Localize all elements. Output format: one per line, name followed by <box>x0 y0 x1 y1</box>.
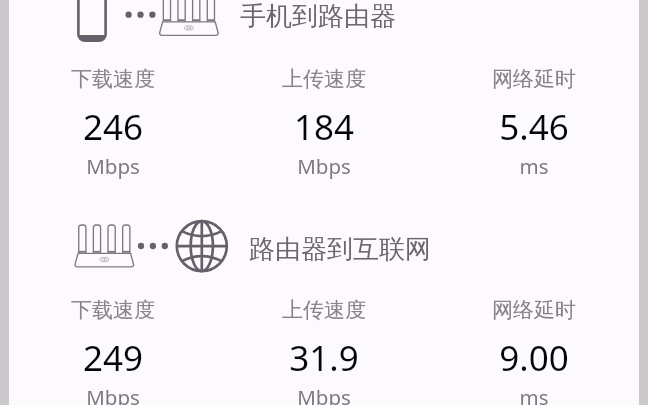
staticText: 上传速度 <box>219 297 429 323</box>
staticText: ms <box>429 152 639 180</box>
staticText: 路由器到互联网 <box>249 233 431 266</box>
staticText: Mbps <box>219 383 429 405</box>
button[interactable]: 下载速度 <box>8 295 218 405</box>
staticText: 5.46 <box>429 103 639 151</box>
button[interactable]: 上传速度 <box>219 295 429 405</box>
button[interactable]: 路由器到互联网 <box>70 219 450 273</box>
staticText: 31.9 <box>219 334 429 382</box>
staticText: 9.00 <box>429 334 639 382</box>
staticText: ms <box>429 383 639 405</box>
staticText: 下载速度 <box>8 297 218 323</box>
button[interactable]: 网络延时 <box>429 64 639 177</box>
button[interactable]: 手机到路由器 <box>70 0 410 42</box>
staticText: Mbps <box>8 383 218 405</box>
staticText: 手机到路由器 <box>240 0 396 33</box>
staticText: 下载速度 <box>8 66 218 92</box>
button[interactable]: 下载速度 <box>8 64 218 177</box>
button[interactable]: 网络延时 <box>429 295 639 405</box>
staticText: 246 <box>8 103 218 151</box>
staticText: 网络延时 <box>429 297 639 323</box>
staticText: 249 <box>8 334 218 382</box>
button[interactable]: 上传速度 <box>219 64 429 177</box>
staticText: Mbps <box>8 152 218 180</box>
staticText: 网络延时 <box>429 66 639 92</box>
staticText: 上传速度 <box>219 66 429 92</box>
staticText: 184 <box>219 103 429 151</box>
staticText: Mbps <box>219 152 429 180</box>
